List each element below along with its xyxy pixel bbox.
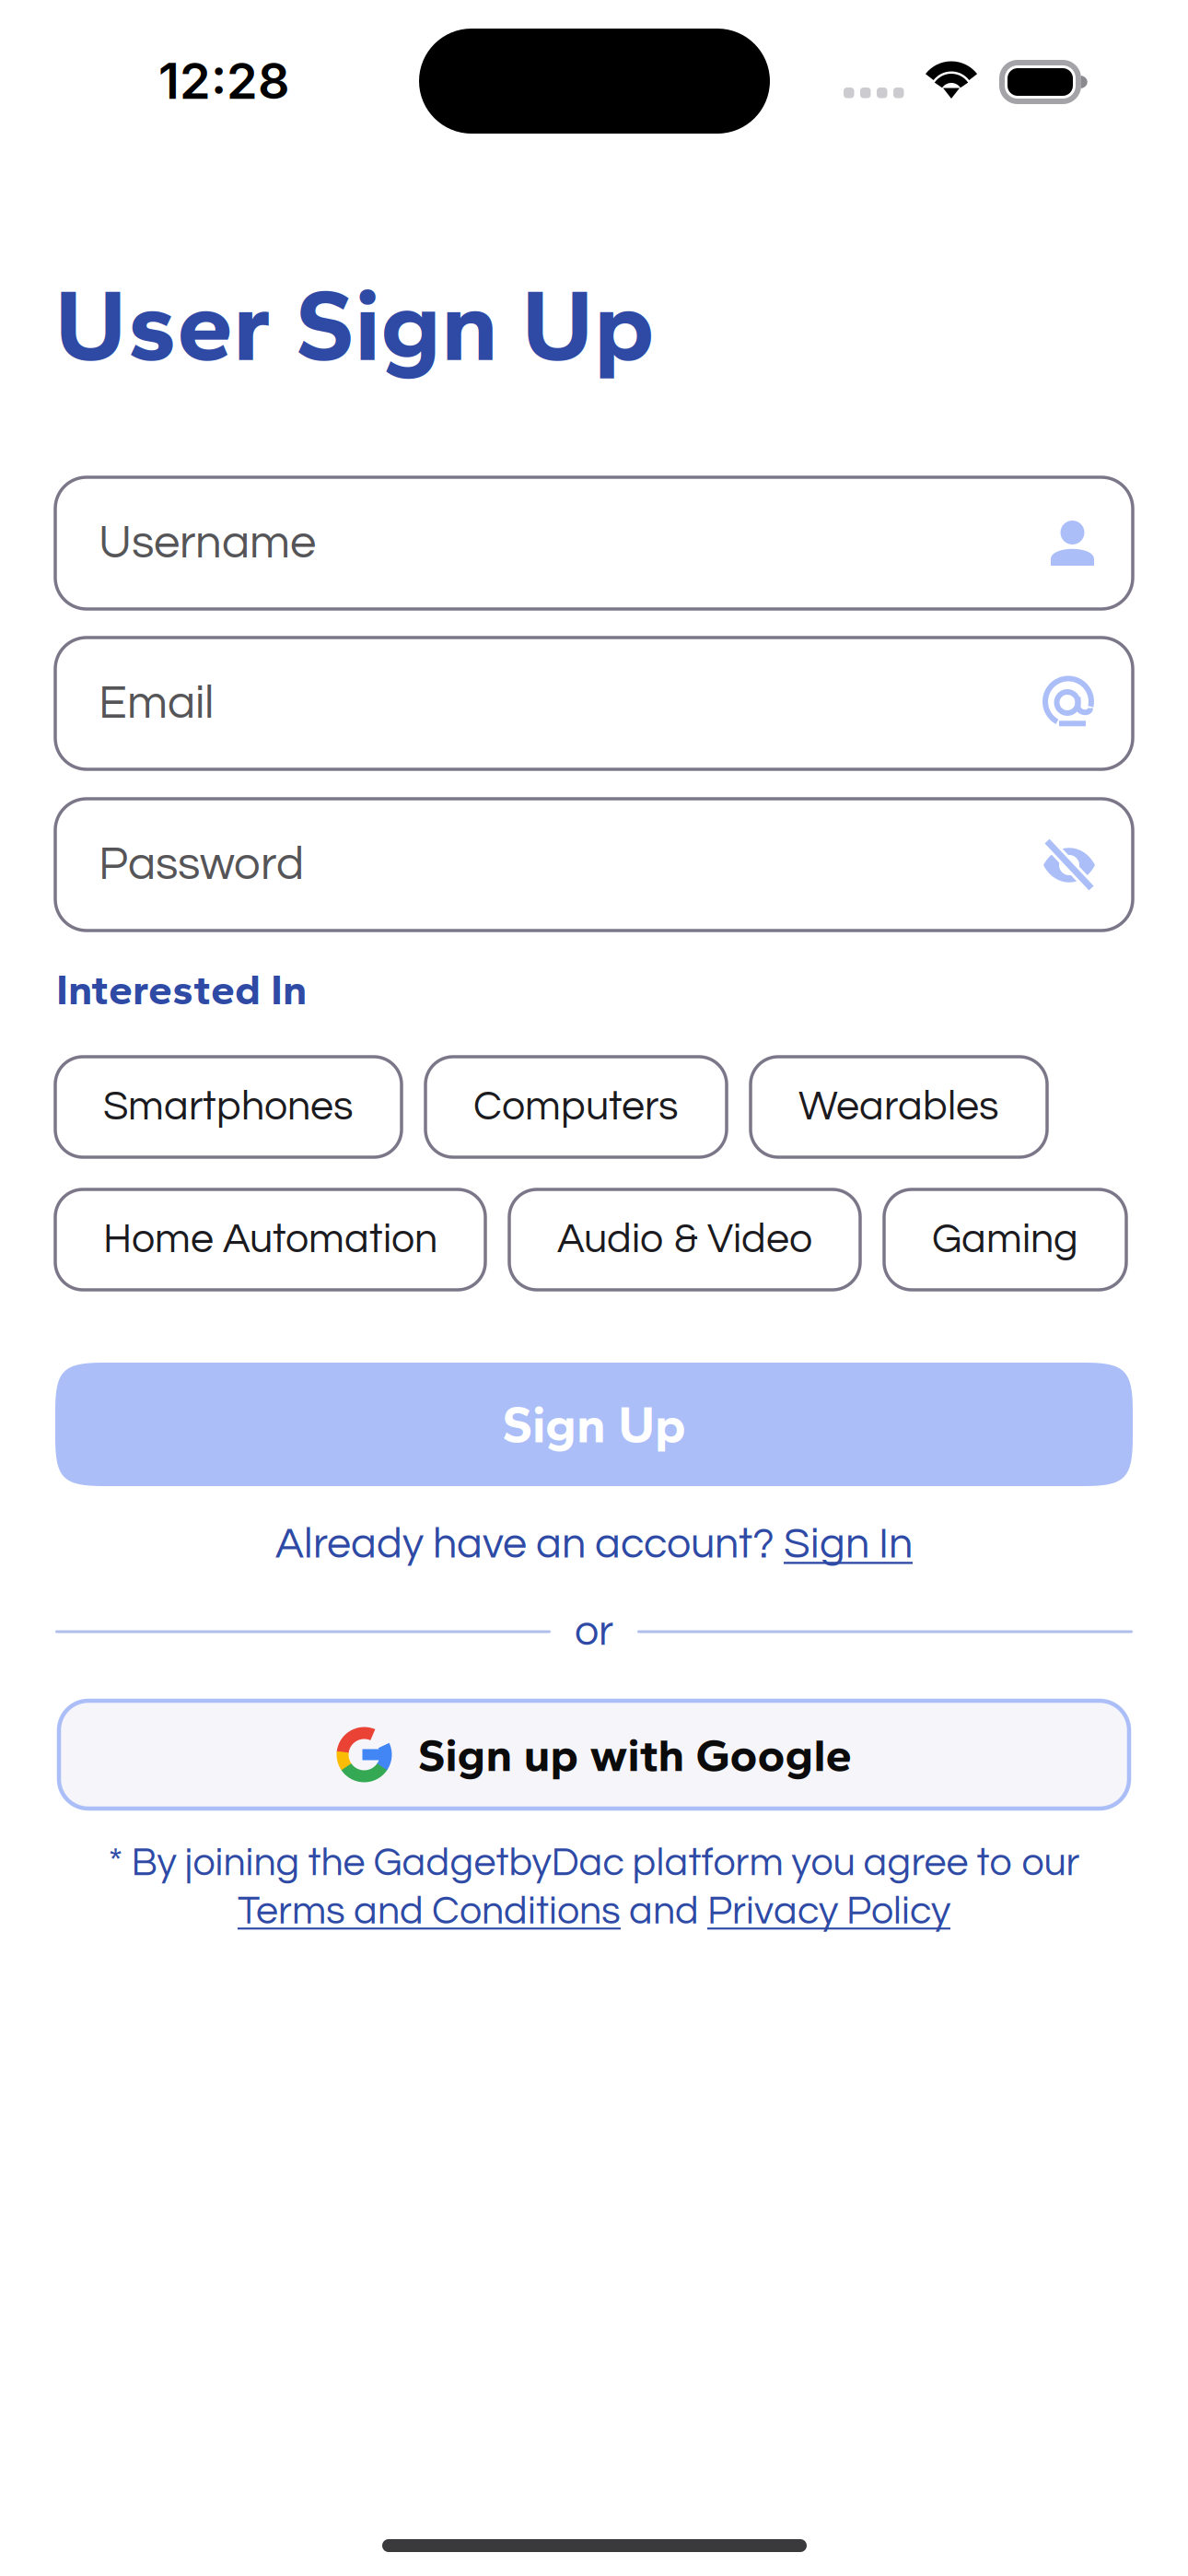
button[interactable]: Computers bbox=[425, 1057, 727, 1157]
staticText: Home Automation bbox=[103, 1218, 437, 1261]
staticText: Gaming bbox=[932, 1218, 1078, 1261]
button[interactable]: Sign up with Google bbox=[59, 1701, 1129, 1809]
staticText: Password bbox=[99, 841, 304, 889]
button[interactable]: Audio & Video bbox=[509, 1189, 860, 1290]
button[interactable]: Email bbox=[55, 638, 1133, 769]
staticText: or bbox=[575, 1610, 613, 1654]
button[interactable]: Password bbox=[55, 799, 1133, 931]
button[interactable]: Gaming bbox=[884, 1189, 1126, 1290]
staticText: Sign Up bbox=[502, 1393, 686, 1455]
staticText: Computers bbox=[473, 1086, 679, 1128]
button[interactable]: Home Automation bbox=[55, 1189, 485, 1290]
button[interactable]: Smartphones bbox=[55, 1057, 402, 1157]
staticText: Already have an account? Sign In bbox=[275, 1523, 913, 1566]
staticText: * By joining the GadgetbyDac platform yo… bbox=[108, 1843, 1080, 1883]
staticText: User Sign Up bbox=[54, 264, 655, 385]
button[interactable]: Sign Up bbox=[55, 1363, 1133, 1486]
button[interactable]: Already have an account? Sign In bbox=[55, 1523, 1133, 1566]
staticText: Smartphones bbox=[103, 1086, 354, 1128]
staticText: Audio & Video bbox=[557, 1218, 812, 1261]
staticText: Username bbox=[99, 519, 316, 567]
button[interactable]: Wearables bbox=[751, 1057, 1047, 1157]
staticText: Wearables bbox=[798, 1086, 999, 1128]
staticText: Sign up with Google bbox=[418, 1727, 851, 1783]
staticText: 12:28 bbox=[158, 51, 290, 111]
staticText: Interested In bbox=[56, 964, 307, 1015]
staticText: Email bbox=[99, 679, 214, 727]
staticText: Terms and Conditions and Privacy Policy bbox=[238, 1892, 950, 1931]
button[interactable]: Username bbox=[55, 477, 1133, 609]
